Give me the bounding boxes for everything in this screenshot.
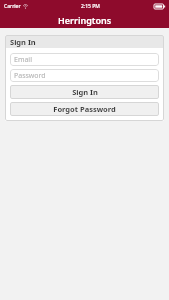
staticText: Sign In <box>10 37 36 47</box>
staticText: Sign In <box>72 87 98 97</box>
staticText: Carrier <box>4 3 21 10</box>
staticText: Forgot Password <box>53 104 116 114</box>
staticText: Herringtons <box>58 14 112 26</box>
button[interactable]: Email <box>10 53 159 66</box>
button[interactable]: Sign In <box>10 85 159 99</box>
button[interactable]: Forgot Password <box>10 102 159 116</box>
staticText: Password <box>14 71 46 81</box>
staticText: Email <box>14 55 32 65</box>
button[interactable]: Password <box>10 69 159 82</box>
staticText: 2:15 PM <box>81 3 100 10</box>
